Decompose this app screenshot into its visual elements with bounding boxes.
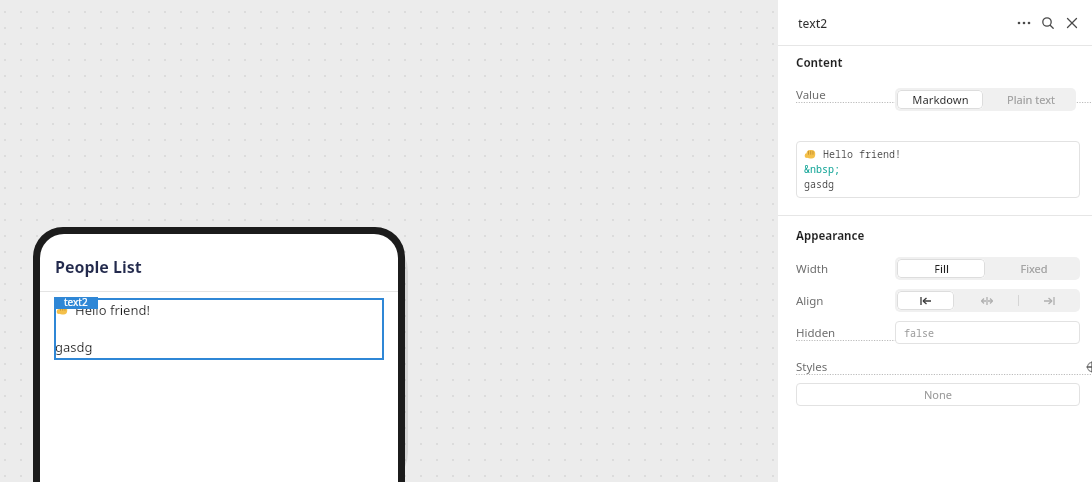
- button[interactable]: Markdown: [897, 90, 983, 109]
- staticText: Hello friend!: [823, 147, 901, 161]
- staticText: Styles: [796, 359, 828, 375]
- staticText: Fixed: [1020, 261, 1048, 276]
- staticText: text2: [64, 295, 88, 307]
- button[interactable]: More options: [1012, 11, 1036, 35]
- staticText: Appearance: [796, 228, 865, 244]
- button[interactable]: Align right: [1018, 289, 1080, 312]
- staticText: gasdg: [804, 177, 834, 191]
- button[interactable]: Fill: [897, 259, 985, 278]
- staticText: Hello friend!: [75, 301, 150, 319]
- staticText: Fill: [934, 261, 949, 276]
- staticText: Width: [796, 261, 828, 277]
- button[interactable]: Align left: [897, 291, 954, 310]
- staticText: &nbsp;: [804, 162, 840, 176]
- button[interactable]: Search: [1036, 11, 1060, 35]
- staticText: Content: [796, 55, 843, 71]
- button[interactable]: None: [796, 383, 1080, 406]
- button[interactable]: Close: [1060, 11, 1084, 35]
- staticText: Markdown: [912, 92, 969, 107]
- staticText: None: [924, 387, 953, 402]
- button[interactable]: false: [895, 321, 1080, 344]
- staticText: People List: [55, 256, 142, 278]
- button[interactable]: Hello friend!: [54, 298, 384, 360]
- staticText: text2: [798, 15, 828, 31]
- button[interactable]: Align center: [956, 289, 1018, 312]
- staticText: false: [904, 326, 934, 340]
- staticText: Align: [796, 293, 824, 309]
- button[interactable]: Fixed: [989, 259, 1078, 278]
- staticText: gasdg: [55, 338, 93, 356]
- button[interactable]: Plain text: [987, 90, 1074, 109]
- staticText: Plain text: [1007, 92, 1055, 107]
- staticText: Hidden: [796, 325, 836, 341]
- staticText: Value: [796, 87, 826, 103]
- button[interactable]: Hello friend!: [796, 141, 1080, 198]
